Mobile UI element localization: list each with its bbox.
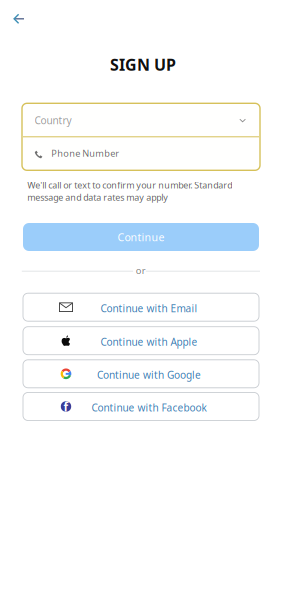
- button[interactable]: f: [23, 392, 259, 420]
- staticText: Continue with Facebook: [91, 401, 206, 414]
- button[interactable]: Continue with Email: [23, 293, 259, 321]
- button[interactable]: Back: [6, 6, 32, 32]
- button[interactable]: Continue with Google: [23, 360, 259, 388]
- staticText: Continue with Apple: [100, 335, 197, 349]
- staticText: We'll call or text to confirm your numbe…: [27, 179, 232, 191]
- staticText: or: [136, 264, 146, 277]
- staticText: SIGN UP: [110, 54, 176, 75]
- button[interactable]: Country: [25, 105, 257, 135]
- staticText: Continue with Email: [100, 301, 197, 315]
- staticText: f: [63, 399, 68, 415]
- staticText: Continue with Google: [97, 368, 201, 382]
- button[interactable]: Phone Number: [25, 138, 257, 168]
- staticText: Country: [34, 113, 71, 127]
- staticText: message and data rates may apply: [27, 191, 168, 203]
- button[interactable]: Continue: [23, 223, 259, 251]
- button[interactable]: Continue with Apple: [23, 327, 259, 355]
- staticText: Continue: [117, 230, 164, 244]
- staticText: Phone Number: [51, 147, 119, 159]
